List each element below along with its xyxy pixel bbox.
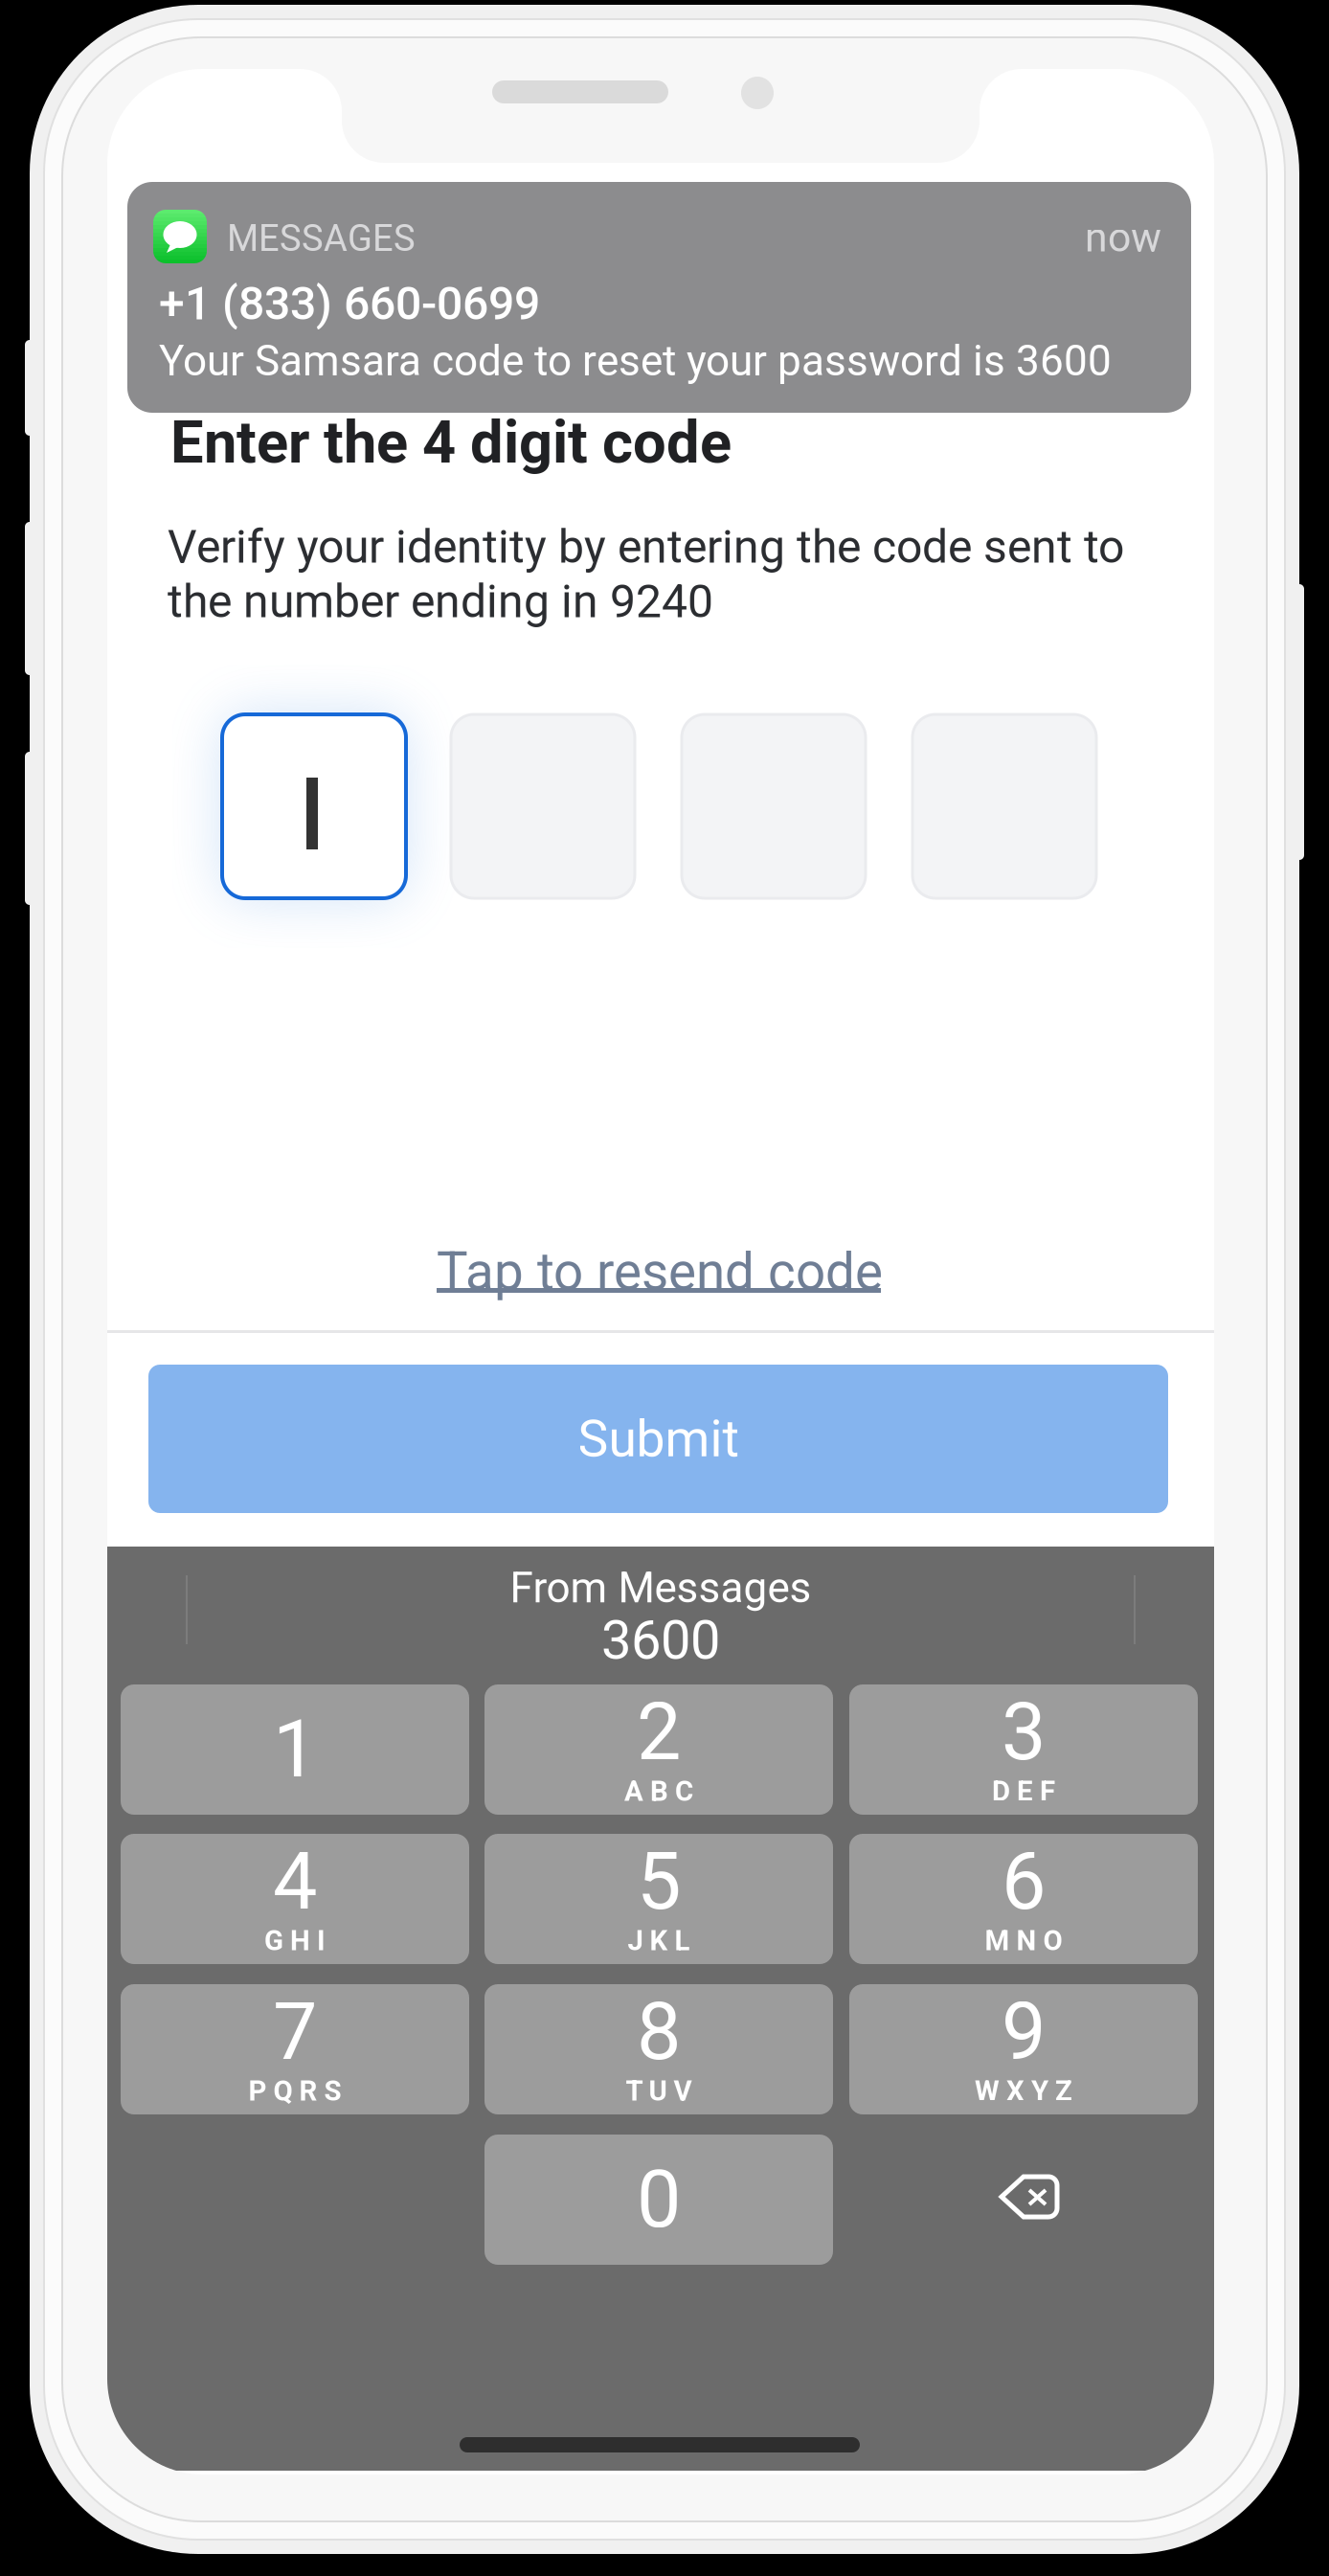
staticText: A B C [624,1775,693,1808]
staticText: 2 [637,1686,681,1779]
staticText: Your Samsara code to reset your password… [159,336,1112,386]
staticText: J K L [628,1924,690,1957]
staticText: D E F [992,1775,1055,1808]
button[interactable]: 3 [849,1684,1198,1815]
staticText: MESSAGES [227,217,416,260]
staticText: the number ending in 9240 [168,574,713,628]
staticText: 3600 [601,1609,720,1672]
button[interactable]: Submit [148,1365,1168,1513]
staticText: P Q R S [248,2074,341,2107]
staticText: 4 [273,1835,317,1928]
staticText: 8 [637,1986,681,2078]
button[interactable]: 9 [849,1984,1198,2114]
staticText: 5 [637,1835,681,1928]
staticText: G H I [264,1924,326,1957]
button[interactable]: 2 [484,1684,833,1815]
button[interactable]: 7 [121,1984,469,2114]
staticText: now [1085,214,1161,261]
button[interactable]: 0 [484,2135,833,2265]
staticText: Verify your identity by entering the cod… [168,520,1124,574]
button[interactable]: 1 [121,1684,469,1815]
button[interactable]: 4 [121,1834,469,1964]
staticText: T U V [626,2074,692,2107]
staticText: 9 [1002,1986,1046,2078]
staticText: M N O [985,1924,1062,1957]
staticText: Tap to resend code [437,1241,883,1302]
button[interactable]: Tap to resend code [437,1235,887,1318]
staticText: 3 [1002,1686,1046,1779]
button[interactable]: Delete [999,2174,1060,2220]
button[interactable]: 8 [484,1984,833,2114]
staticText: 0 [637,2153,681,2246]
staticText: 7 [273,1986,317,2078]
button[interactable]: 5 [484,1834,833,1964]
staticText: +1 (833) 660-0699 [159,277,540,330]
button[interactable]: 6 [849,1834,1198,1964]
staticText: Enter the 4 digit code [170,408,732,477]
button[interactable] [222,714,406,898]
staticText: 1 [273,1703,317,1796]
staticText: W X Y Z [975,2074,1072,2107]
staticText: 6 [1002,1835,1046,1928]
staticText: Submit [578,1409,739,1469]
staticText: From Messages [510,1563,811,1613]
